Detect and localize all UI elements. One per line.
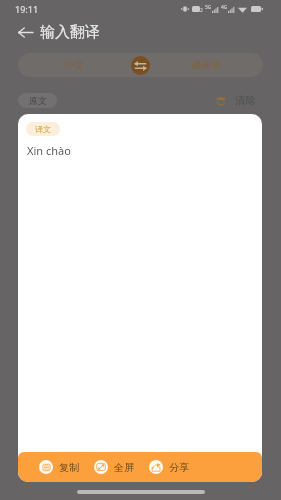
- staticText: 越南语: [192, 59, 221, 71]
- button[interactable]: 分享: [149, 460, 189, 474]
- staticText: 清除: [235, 94, 256, 107]
- button[interactable]: Back: [12, 19, 38, 45]
- staticText: 原文: [29, 95, 47, 106]
- staticText: 4G: [221, 4, 228, 11]
- button[interactable]: 清除: [216, 93, 256, 108]
- button[interactable]: 中文: [18, 53, 131, 77]
- staticText: 输入翻译: [40, 23, 100, 42]
- staticText: 译文: [35, 124, 51, 134]
- button[interactable]: 越南语: [150, 53, 263, 77]
- staticText: 全屏: [114, 461, 134, 474]
- staticText: 2: [200, 7, 203, 14]
- staticText: 复制: [59, 461, 79, 474]
- button[interactable]: Swap languages: [131, 56, 150, 75]
- staticText: 5G: [205, 4, 212, 11]
- button[interactable]: 全屏: [94, 460, 134, 474]
- button[interactable]: 复制: [39, 460, 79, 474]
- button[interactable]: 原文: [18, 93, 57, 108]
- staticText: Xin chào: [27, 143, 71, 158]
- staticText: 分享: [169, 461, 189, 474]
- staticText: 19:11: [15, 3, 39, 15]
- staticText: 中文: [65, 59, 84, 71]
